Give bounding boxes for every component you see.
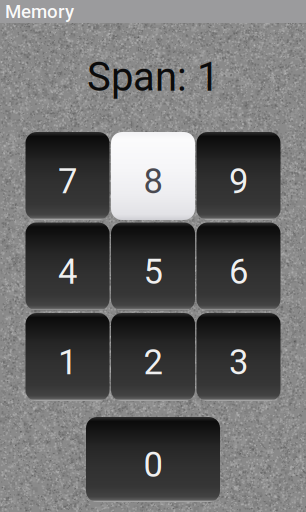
button[interactable]: 0: [86, 417, 220, 502]
staticText: 7: [58, 161, 77, 202]
staticText: 8: [143, 161, 162, 202]
staticText: 9: [229, 161, 248, 202]
staticText: 3: [229, 342, 248, 383]
staticText: 2: [143, 342, 162, 383]
staticText: 4: [58, 252, 77, 292]
button[interactable]: 8: [111, 132, 195, 220]
button[interactable]: 7: [25, 132, 109, 220]
button[interactable]: 4: [25, 222, 109, 310]
staticText: 0: [143, 445, 162, 485]
staticText: 1: [58, 342, 77, 383]
button[interactable]: 2: [111, 313, 195, 401]
staticText: 5: [143, 252, 162, 292]
staticText: Memory: [5, 1, 74, 22]
button[interactable]: 9: [196, 132, 280, 220]
button[interactable]: 6: [196, 222, 280, 310]
button[interactable]: 3: [196, 313, 280, 401]
staticText: Span: 1: [87, 54, 219, 100]
button[interactable]: 1: [25, 313, 109, 401]
staticText: 6: [229, 252, 248, 292]
button[interactable]: 5: [111, 222, 195, 310]
